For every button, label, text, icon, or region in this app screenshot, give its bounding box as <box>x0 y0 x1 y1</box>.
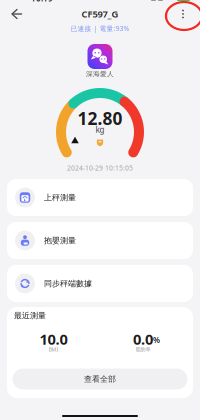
staticText: % <box>153 335 160 345</box>
button[interactable]: 同步秤端數據 <box>7 265 193 302</box>
staticText: 查看全部 <box>84 374 116 384</box>
button[interactable]: Back <box>6 5 28 23</box>
staticText: 12.80 <box>77 107 122 130</box>
staticText: kg <box>95 124 104 135</box>
staticText: 10.0 <box>39 329 67 349</box>
button[interactable]: 上秤測量 <box>7 179 193 216</box>
staticText: 深海愛人 <box>86 70 114 78</box>
staticText: 同步秤端數據 <box>44 279 92 288</box>
staticText: 上秤測量 <box>44 193 76 202</box>
button[interactable]: 查看全部 <box>12 368 187 389</box>
staticText: 脂肪率 <box>135 346 150 353</box>
button[interactable]: More options <box>172 5 194 23</box>
staticText: CF597_G <box>81 8 118 20</box>
staticText: 0.0 <box>133 329 153 349</box>
button[interactable]: 抱嬰測量 <box>7 222 193 259</box>
staticText: BMI <box>48 346 58 353</box>
staticText: 抱嬰測量 <box>44 236 76 245</box>
staticText: 2024-10-29 10:15:05 <box>67 164 133 172</box>
staticText: 已連接 | 電量:93% <box>70 24 129 33</box>
staticText: 10:19 <box>31 0 53 4</box>
staticText: 最近測量 <box>14 311 46 320</box>
